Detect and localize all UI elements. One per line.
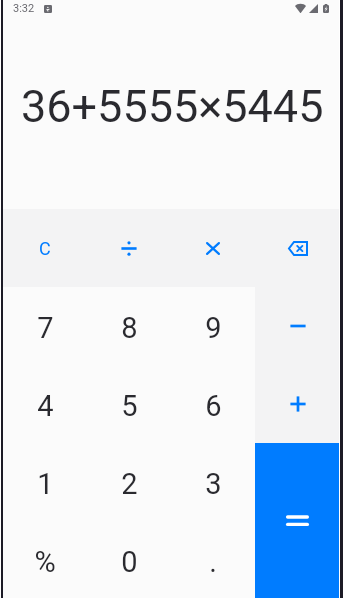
button[interactable]: .: [171, 521, 255, 598]
staticText: 7: [37, 311, 54, 345]
button[interactable]: 7: [3, 287, 87, 365]
button[interactable]: Multiply: [171, 209, 255, 287]
staticText: 9: [205, 311, 222, 345]
staticText: 6: [205, 389, 222, 423]
button[interactable]: 3: [171, 443, 255, 521]
staticText: 36+5555×5445: [21, 80, 324, 133]
staticText: 0: [121, 545, 138, 579]
staticText: %: [34, 545, 56, 579]
staticText: 3: [205, 467, 222, 501]
staticText: 4: [37, 389, 54, 423]
button[interactable]: Clear: [3, 209, 87, 287]
button[interactable]: 6: [171, 365, 255, 443]
button[interactable]: 1: [3, 443, 87, 521]
button[interactable]: Backspace: [255, 209, 339, 287]
staticText: 2: [121, 467, 138, 501]
staticText: C: [39, 238, 51, 259]
button[interactable]: 5: [87, 365, 171, 443]
button[interactable]: 2: [87, 443, 171, 521]
staticText: 8: [121, 311, 138, 345]
staticText: .: [209, 545, 217, 579]
button[interactable]: %: [3, 521, 87, 598]
button[interactable]: Divide: [87, 209, 171, 287]
staticText: 1: [37, 467, 54, 501]
staticText: 3:32: [13, 2, 35, 15]
button[interactable]: 4: [3, 365, 87, 443]
button[interactable]: Equals: [255, 443, 339, 598]
button[interactable]: Plus: [255, 365, 339, 443]
button[interactable]: 9: [171, 287, 255, 365]
button[interactable]: 8: [87, 287, 171, 365]
staticText: 5: [121, 389, 138, 423]
button[interactable]: 0: [87, 521, 171, 598]
button[interactable]: Minus: [255, 287, 339, 365]
